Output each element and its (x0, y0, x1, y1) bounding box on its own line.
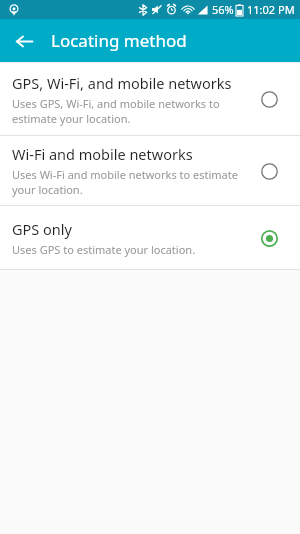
button[interactable]: GPS, Wi-Fi, and mobile networks (0, 63, 300, 135)
staticText: estimate your location. (12, 111, 131, 126)
button[interactable]: Wi-Fi and mobile networks (0, 136, 300, 205)
button[interactable]: GPS only (0, 206, 300, 269)
staticText: 11:02 PM (247, 2, 295, 17)
staticText: 56% (212, 2, 234, 17)
staticText: GPS, Wi-Fi, and mobile networks (12, 73, 232, 93)
staticText: your location. (12, 182, 83, 197)
staticText: Uses GPS, Wi-Fi, and mobile networks to (12, 96, 220, 111)
staticText: Locating method (51, 29, 187, 52)
staticText: Uses Wi-Fi and mobile networks to estima… (12, 167, 238, 182)
button[interactable]: Navigate up (8, 25, 40, 57)
staticText: GPS only (12, 219, 72, 239)
staticText: Uses GPS to estimate your location. (12, 242, 196, 257)
staticText: Wi-Fi and mobile networks (12, 144, 193, 164)
